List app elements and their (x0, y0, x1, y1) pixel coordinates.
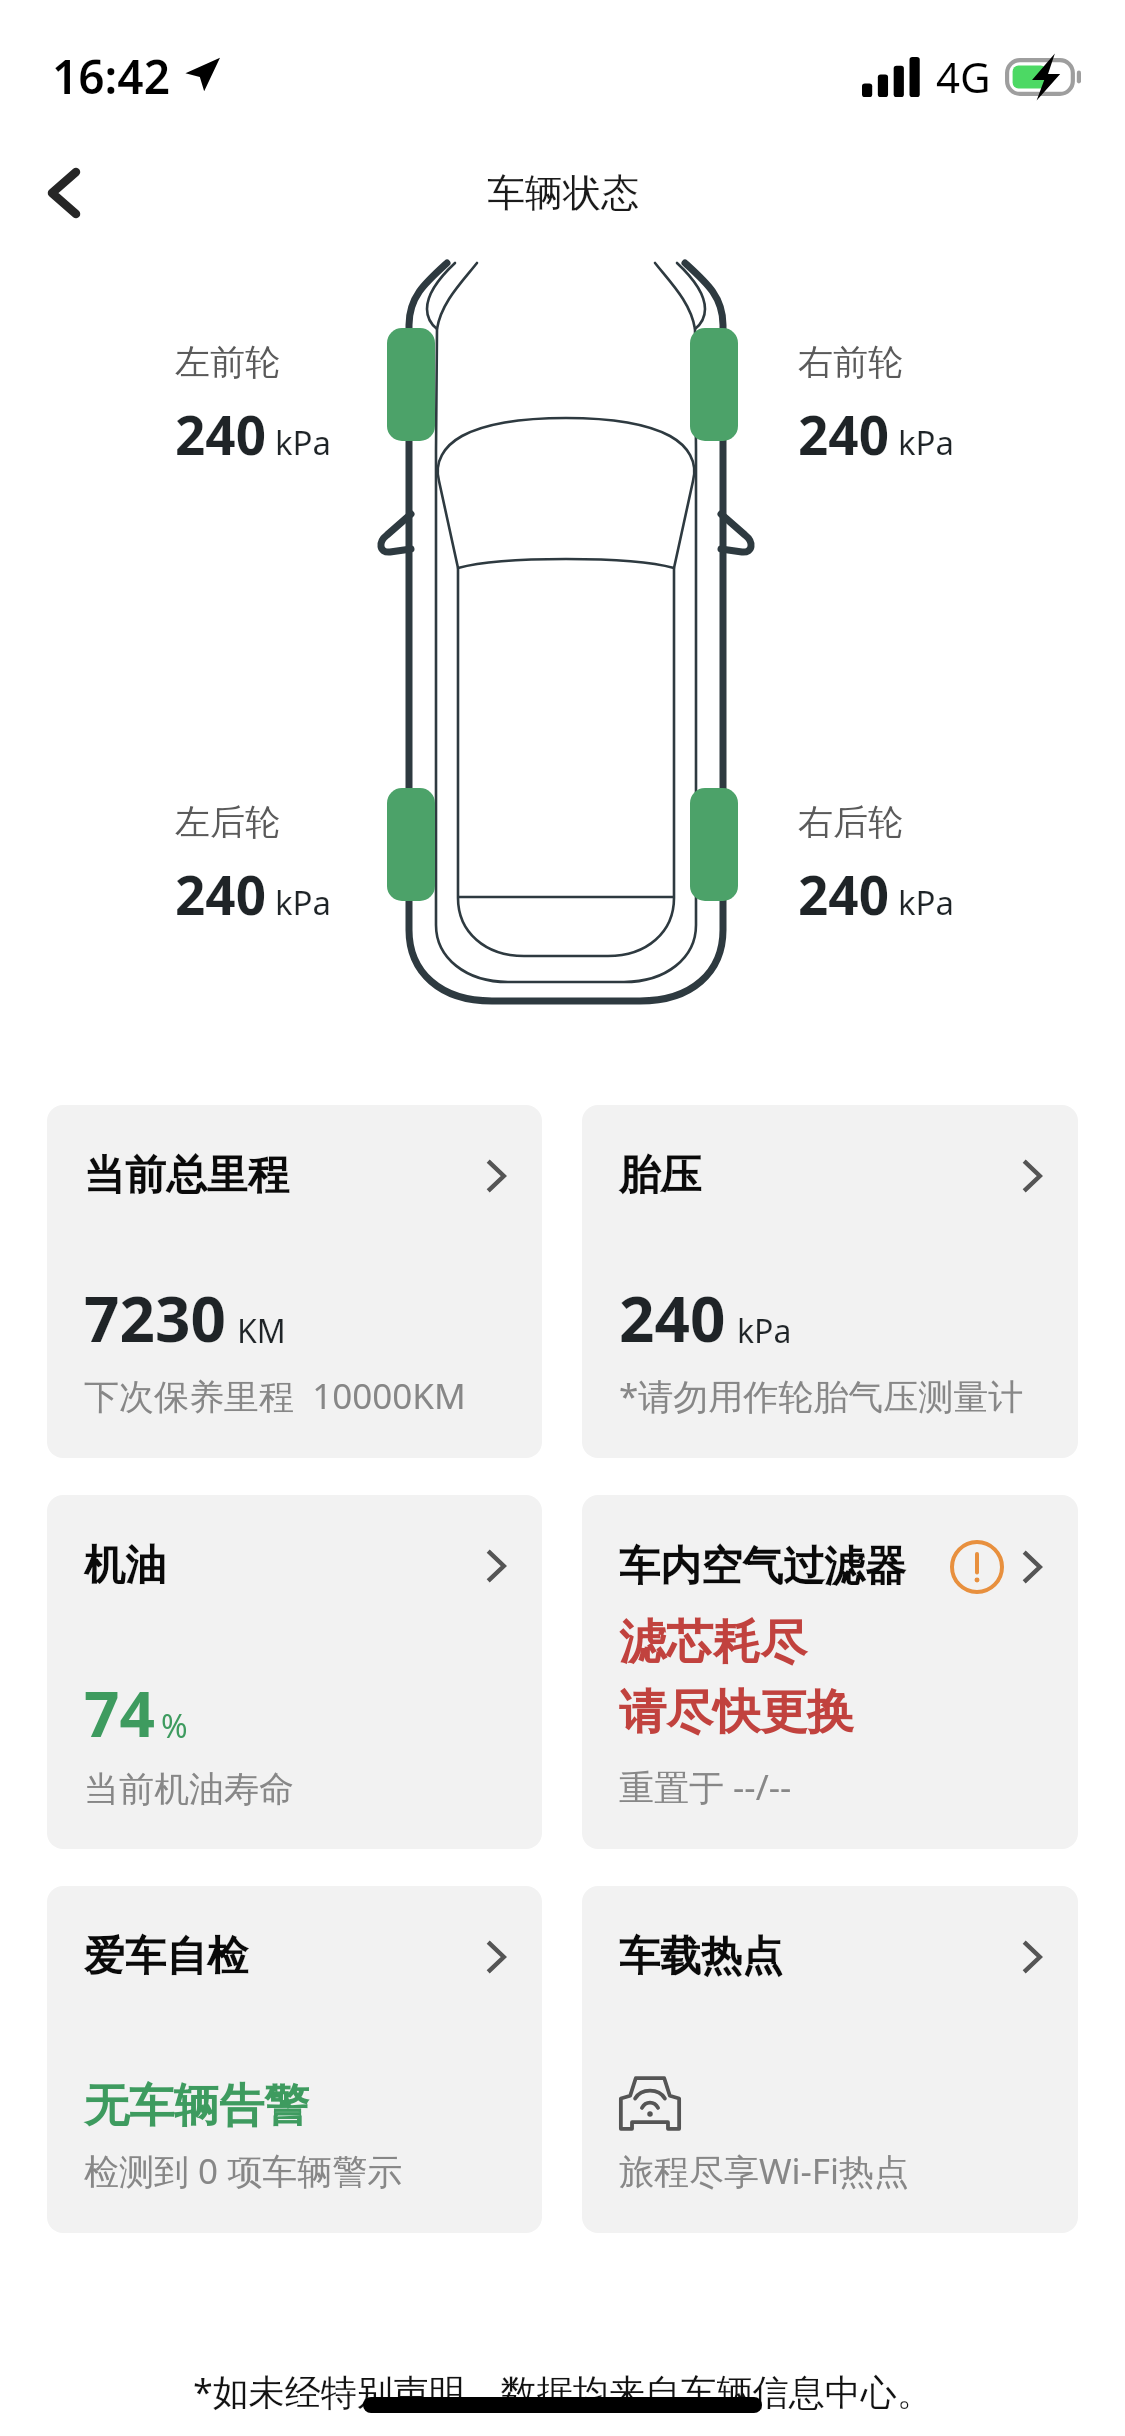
staticText: 当前总里程 (84, 1150, 289, 1202)
staticText: *如未经特别声明，数据均来自车辆信息中心。 (193, 2367, 933, 2416)
staticText: 胎压 (619, 1150, 701, 1202)
staticText: KM (237, 1309, 286, 1353)
staticText: 当前机油寿命 (84, 1767, 294, 1811)
button[interactable]: 爱车自检 (47, 1886, 542, 2233)
staticText: 4G (936, 48, 991, 105)
button[interactable]: 机油 (47, 1495, 542, 1849)
staticText: 240 (798, 398, 889, 470)
staticText: 车载热点 (619, 1931, 783, 1983)
staticText: kPa (898, 420, 955, 465)
staticText: 240 (175, 398, 266, 470)
staticText: 左前轮 (175, 340, 280, 384)
staticText: 240 (619, 1276, 726, 1360)
staticText: 74 (84, 1671, 155, 1755)
button[interactable]: 车载热点 (582, 1886, 1078, 2233)
staticText: kPa (898, 880, 955, 925)
button[interactable]: 当前总里程 (47, 1105, 542, 1458)
staticText: 检测到 0 项车辆警示 (84, 2147, 403, 2195)
staticText: 机油 (84, 1540, 166, 1592)
staticText: 旅程尽享Wi-Fi热点 (619, 2147, 910, 2195)
staticText: *请勿用作轮胎气压测量计 (619, 1372, 1024, 1420)
staticText: kPa (275, 420, 332, 465)
staticText: kPa (275, 880, 332, 925)
staticText: 右后轮 (798, 800, 903, 844)
staticText: 无车辆告警 (84, 2078, 309, 2135)
staticText: kPa (737, 1309, 792, 1353)
staticText: 滤芯耗尽 (619, 1613, 807, 1672)
button[interactable]: 车内空气过滤器 (582, 1495, 1078, 1849)
staticText: 右前轮 (798, 340, 903, 384)
staticText: 重置于 --/-- (619, 1763, 792, 1811)
staticText: 爱车自检 (84, 1931, 248, 1983)
staticText: 16:42 (52, 45, 170, 108)
staticText: % (161, 1704, 188, 1748)
staticText: 车辆状态 (487, 169, 639, 217)
staticText: 7230 (84, 1276, 226, 1360)
staticText: 车内空气过滤器 (619, 1541, 906, 1593)
staticText: 下次保养里程 10000KM (84, 1372, 466, 1420)
staticText: 240 (798, 858, 889, 930)
staticText: 请尽快更换 (619, 1683, 854, 1742)
button[interactable]: 胎压 (582, 1105, 1078, 1458)
staticText: 240 (175, 858, 266, 930)
staticText: 左后轮 (175, 800, 280, 844)
button[interactable]: Back (18, 147, 110, 239)
